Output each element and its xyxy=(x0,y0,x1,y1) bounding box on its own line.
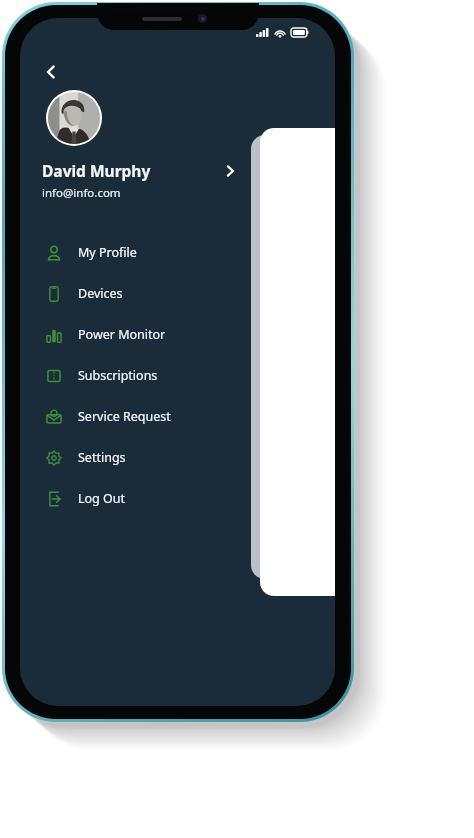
staticText: My Profile xyxy=(78,244,137,261)
button[interactable]: Log Out xyxy=(20,478,335,519)
staticText: Power Monitor xyxy=(78,326,166,343)
staticText: Settings xyxy=(78,449,126,466)
button[interactable]: Subscriptions xyxy=(20,355,335,396)
button[interactable]: Back xyxy=(34,55,68,89)
staticText: David Murphy xyxy=(42,160,151,181)
staticText: Service Request xyxy=(78,408,171,425)
button[interactable]: Devices xyxy=(20,273,335,314)
button[interactable]: Service Request xyxy=(20,396,335,437)
staticText: Devices xyxy=(78,285,123,302)
button[interactable]: Power Monitor xyxy=(20,314,335,355)
button[interactable]: My Profile xyxy=(20,232,335,273)
button[interactable]: Profile photo xyxy=(48,92,100,144)
staticText: info@info.com xyxy=(42,185,121,201)
staticText: Log Out xyxy=(78,490,126,507)
button[interactable]: Settings xyxy=(20,437,335,478)
staticText: Subscriptions xyxy=(78,367,158,384)
button[interactable]: David Murphy xyxy=(42,160,237,181)
